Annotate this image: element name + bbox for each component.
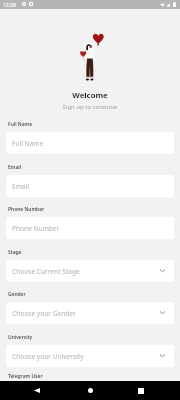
staticText: Choose your University: [12, 352, 160, 361]
staticText: Sign up to continue: [0, 103, 180, 111]
staticText: University: [8, 334, 33, 341]
button[interactable]: Email: [6, 175, 174, 197]
button[interactable]: Back: [21, 381, 53, 400]
staticText: Telegram User: [8, 373, 43, 380]
staticText: Phone Number: [12, 224, 165, 233]
button[interactable]: Full Name: [6, 132, 174, 154]
staticText: Choose your Gender: [12, 309, 160, 318]
staticText: Email: [12, 182, 165, 191]
button[interactable]: Recents: [125, 381, 157, 400]
staticText: Email: [8, 164, 22, 171]
staticText: Full Name: [8, 121, 33, 128]
staticText: Welcome: [0, 90, 180, 101]
button[interactable]: Choose your University: [6, 345, 174, 367]
button[interactable]: Home: [74, 381, 106, 400]
staticText: Gender: [8, 291, 26, 298]
staticText: Full Name: [12, 139, 165, 148]
staticText: Choose Current Stage: [12, 267, 160, 276]
button[interactable]: Choose Current Stage: [6, 260, 174, 282]
staticText: Stage: [8, 249, 22, 256]
staticText: Phone Number: [8, 206, 45, 213]
button[interactable]: Choose your Gender: [6, 302, 174, 324]
staticText: 12:29: [3, 2, 16, 9]
button[interactable]: Phone Number: [6, 217, 174, 239]
